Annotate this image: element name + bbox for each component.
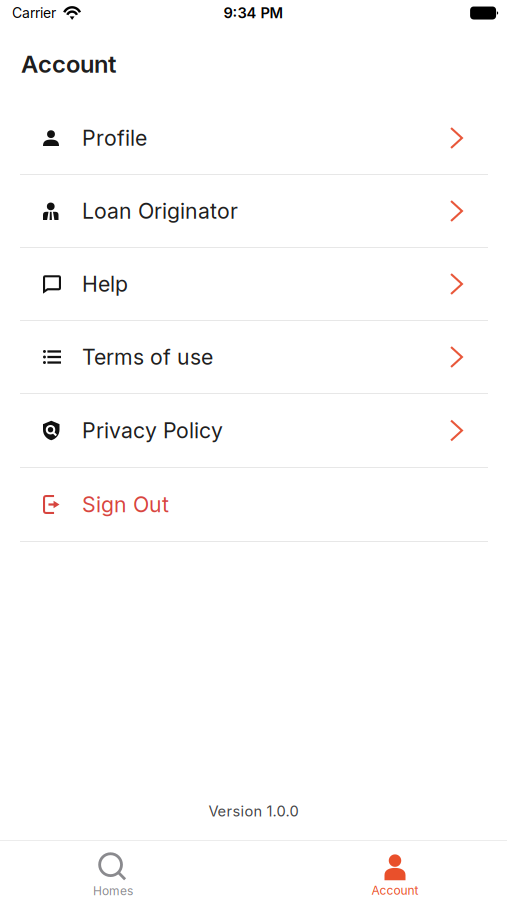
button[interactable]: Profile <box>0 102 507 175</box>
staticText: Carrier <box>12 4 56 21</box>
staticText: Loan Originator <box>82 198 238 224</box>
staticText: Version 1.0.0 <box>208 802 298 820</box>
staticText: Account <box>371 883 418 898</box>
staticText: Profile <box>82 125 147 151</box>
staticText: Privacy Policy <box>82 418 223 443</box>
button[interactable]: Loan Originator <box>0 175 507 248</box>
staticText: Homes <box>93 884 133 898</box>
button[interactable]: Homes <box>58 841 168 900</box>
staticText: 9:34 PM <box>223 4 283 22</box>
button[interactable]: Sign Out <box>0 468 507 542</box>
button[interactable]: Account <box>340 841 450 900</box>
staticText: Sign Out <box>82 492 169 517</box>
staticText: Terms of use <box>82 344 213 370</box>
button[interactable]: Privacy Policy <box>0 394 507 468</box>
button[interactable]: Terms of use <box>0 321 507 394</box>
staticText: Help <box>82 271 128 297</box>
staticText: Account <box>21 49 116 78</box>
button[interactable]: Help <box>0 248 507 321</box>
